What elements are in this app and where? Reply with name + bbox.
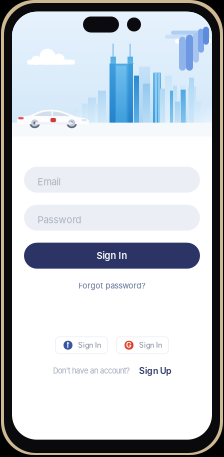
staticText: Forgot password? [78, 281, 145, 291]
staticText: G [126, 341, 132, 350]
staticText: Sign In [78, 341, 101, 349]
button[interactable]: Sign In [24, 243, 200, 269]
staticText: Password [37, 214, 81, 225]
staticText: Don't have an account? [53, 366, 130, 375]
button[interactable]: Sign in with Facebook [55, 337, 107, 354]
button[interactable]: Forgot password? [12, 280, 212, 292]
button[interactable]: Sign in with Google [116, 337, 168, 354]
staticText: f [66, 341, 69, 350]
staticText: Sign In [96, 250, 127, 261]
staticText: Sign In [139, 341, 162, 349]
staticText: Email [37, 176, 60, 187]
button[interactable]: Sign Up [139, 365, 171, 376]
staticText: Sign Up [139, 365, 171, 376]
